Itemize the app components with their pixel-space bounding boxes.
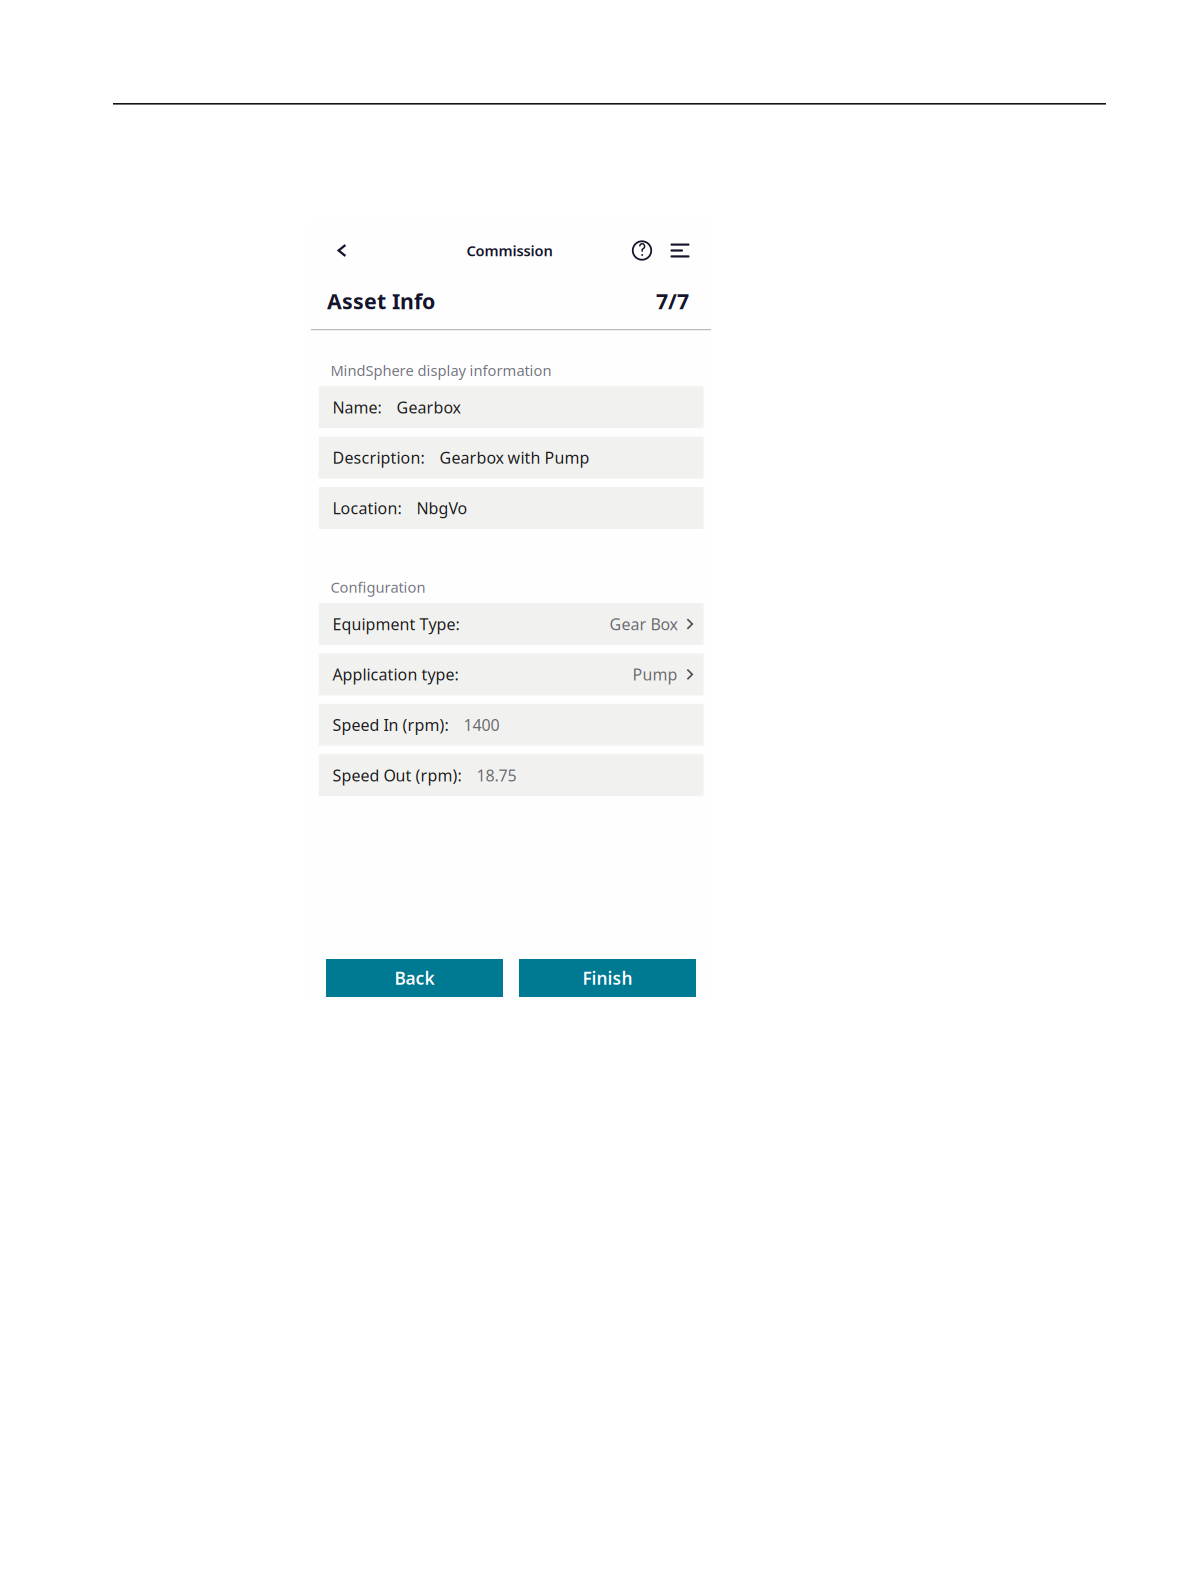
- button[interactable]: Name:: [319, 386, 704, 428]
- staticText: NbgVo: [416, 497, 467, 519]
- button[interactable]: Location:: [319, 487, 704, 529]
- button[interactable]: Speed Out (rpm):: [319, 754, 704, 796]
- staticText: Gearbox with Pump: [439, 447, 589, 468]
- staticText: Speed Out (rpm):: [332, 765, 461, 786]
- button[interactable]: Speed In (rpm):: [319, 704, 704, 746]
- staticText: Back: [394, 966, 434, 989]
- staticText: Gearbox: [396, 397, 460, 418]
- staticText: Speed In (rpm):: [332, 714, 448, 735]
- staticText: Description:: [332, 447, 424, 468]
- button[interactable]: Finish: [519, 959, 696, 997]
- staticText: Gear Box: [609, 613, 677, 635]
- button[interactable]: Application type:: [319, 653, 704, 695]
- staticText: 18.75: [476, 765, 516, 786]
- staticText: Application type:: [332, 664, 458, 685]
- staticText: Finish: [582, 966, 632, 989]
- button[interactable]: Back: [326, 959, 503, 997]
- button[interactable]: Help: [619, 231, 665, 269]
- staticText: 1400: [463, 714, 499, 735]
- button[interactable]: Back: [325, 231, 359, 269]
- staticText: MindSphere display information: [330, 360, 551, 380]
- button[interactable]: Equipment Type:: [319, 603, 704, 645]
- staticText: Commission: [466, 241, 552, 260]
- button[interactable]: Menu: [665, 231, 695, 269]
- staticText: 7/7: [656, 287, 689, 315]
- staticText: Asset Info: [327, 287, 435, 315]
- staticText: Location:: [332, 497, 401, 519]
- staticText: Pump: [632, 664, 677, 685]
- staticText: Configuration: [330, 577, 425, 597]
- staticText: Equipment Type:: [332, 613, 459, 635]
- staticText: Name:: [332, 397, 381, 418]
- button[interactable]: Description:: [319, 437, 704, 479]
